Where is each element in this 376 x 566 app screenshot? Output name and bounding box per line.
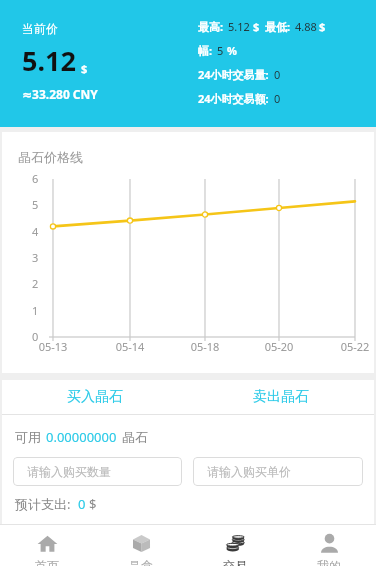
staticText: 5.12 [228, 19, 250, 34]
staticText: 24小时交易量: [198, 67, 269, 82]
staticText: 幅: [198, 43, 213, 58]
staticText: 晶石价格线 [18, 149, 83, 165]
staticText: 交易 [223, 558, 247, 566]
staticText: 2 [32, 276, 39, 291]
staticText: $ [89, 495, 97, 513]
staticText: 0 [78, 495, 86, 513]
button[interactable]: 请输入购买单价 [193, 457, 363, 486]
button[interactable]: 首页 [0, 525, 94, 566]
staticText: 请输入购买数量 [27, 464, 111, 479]
button[interactable]: 交易 [188, 525, 282, 566]
staticText: 05-13 [33, 339, 73, 354]
staticText: 首页 [35, 558, 59, 566]
staticText: 05-14 [110, 339, 150, 354]
staticText: 可用 [15, 429, 41, 445]
staticText: 05-18 [185, 339, 225, 354]
staticText: % [227, 43, 237, 58]
staticText: 晶石 [122, 429, 148, 445]
staticText: 05-22 [335, 339, 375, 354]
button[interactable]: 卖出晶石 [188, 380, 374, 414]
staticText: 请输入购买单价 [207, 464, 291, 479]
staticText: 3 [32, 250, 39, 265]
staticText: $ [81, 61, 88, 76]
staticText: 0.00000000 [46, 428, 117, 446]
staticText: $ [319, 19, 326, 34]
staticText: 最高: [198, 19, 224, 34]
staticText: 当前价 [22, 21, 58, 36]
staticText: 5.12 [22, 42, 76, 79]
staticText: 24小时交易额: [198, 91, 269, 106]
staticText: 0 [274, 67, 281, 82]
staticText: ≈33.280 CNY [22, 86, 98, 102]
staticText: $ [253, 19, 260, 34]
staticText: 我的 [317, 558, 341, 566]
staticText: 最低: [265, 19, 291, 34]
staticText: 预计支出: [15, 495, 71, 513]
button[interactable]: 晶盒 [94, 525, 188, 566]
button[interactable]: 买入晶石 [2, 380, 188, 414]
staticText: 6 [32, 171, 39, 186]
staticText: 5 [217, 43, 224, 58]
staticText: 1 [32, 303, 39, 318]
button[interactable]: 我的 [282, 525, 376, 566]
staticText: 5 [32, 197, 39, 212]
staticText: 卖出晶石 [253, 388, 309, 406]
staticText: 晶盒 [129, 558, 153, 566]
staticText: 4.88 [295, 19, 317, 34]
staticText: 0 [274, 91, 281, 106]
staticText: 4 [32, 224, 39, 239]
staticText: 买入晶石 [67, 388, 123, 406]
staticText: 05-20 [259, 339, 299, 354]
button[interactable]: 请输入购买数量 [13, 457, 182, 486]
staticText: 0 [32, 329, 39, 344]
